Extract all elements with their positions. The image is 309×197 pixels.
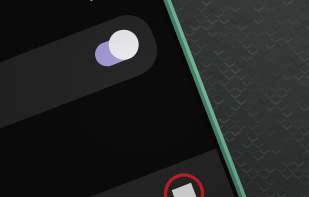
button[interactable]: TV cast settings screen [0, 0, 309, 197]
